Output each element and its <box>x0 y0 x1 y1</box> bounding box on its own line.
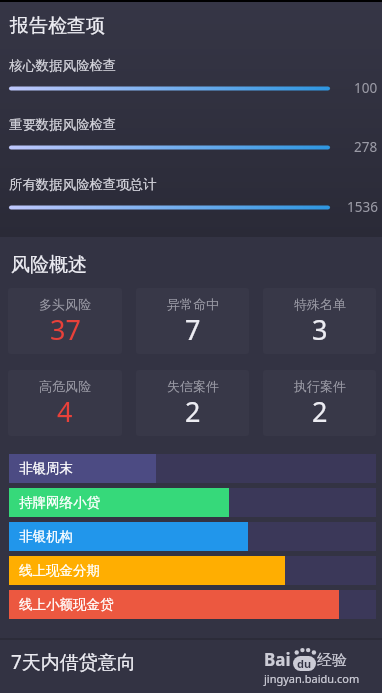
staticText: 线上小额现金贷 <box>19 596 114 613</box>
staticText: 特殊名单 <box>294 296 346 312</box>
staticText: 所有数据风险检查项总计 <box>9 176 157 193</box>
button[interactable]: 多头风险 <box>8 288 122 354</box>
staticText: 经验 <box>317 651 347 670</box>
staticText: 报告检查项 <box>10 14 105 38</box>
button[interactable]: 线上小额现金贷 <box>9 590 376 619</box>
staticText: Bai <box>264 648 291 671</box>
button[interactable]: 异常命中 <box>136 288 249 354</box>
staticText: 4 <box>57 393 73 430</box>
staticText: 7 <box>185 311 201 348</box>
staticText: 核心数据风险检查 <box>9 57 117 74</box>
staticText: 失信案件 <box>167 378 219 394</box>
staticText: jingyan.baidu.com <box>264 671 360 686</box>
staticText: 异常命中 <box>167 296 219 312</box>
button[interactable]: 非银周末 <box>9 454 376 483</box>
button[interactable]: 非银机构 <box>9 522 376 551</box>
staticText: du <box>297 656 312 671</box>
staticText: 风险概述 <box>11 253 87 277</box>
staticText: 7天内借贷意向 <box>11 649 136 675</box>
staticText: 37 <box>50 311 81 348</box>
button[interactable]: 执行案件 <box>263 370 376 436</box>
staticText: 线上现金分期 <box>19 562 100 579</box>
staticText: 1536 <box>347 198 378 216</box>
staticText: 非银周末 <box>19 460 73 477</box>
button[interactable]: 持牌网络小贷 <box>9 488 376 517</box>
button[interactable]: 高危风险 <box>8 370 122 436</box>
staticText: 2 <box>312 393 328 430</box>
staticText: 100 <box>354 79 378 97</box>
staticText: 多头风险 <box>39 296 91 312</box>
staticText: 持牌网络小贷 <box>19 494 100 511</box>
staticText: 2 <box>185 393 201 430</box>
staticText: 重要数据风险检查 <box>9 116 117 133</box>
staticText: 非银机构 <box>19 528 73 545</box>
staticText: 执行案件 <box>294 378 346 394</box>
button[interactable]: 线上现金分期 <box>9 556 376 585</box>
button[interactable]: 失信案件 <box>136 370 249 436</box>
button[interactable]: 特殊名单 <box>263 288 376 354</box>
staticText: 3 <box>312 311 328 348</box>
staticText: 278 <box>354 138 378 156</box>
staticText: 高危风险 <box>39 378 91 394</box>
